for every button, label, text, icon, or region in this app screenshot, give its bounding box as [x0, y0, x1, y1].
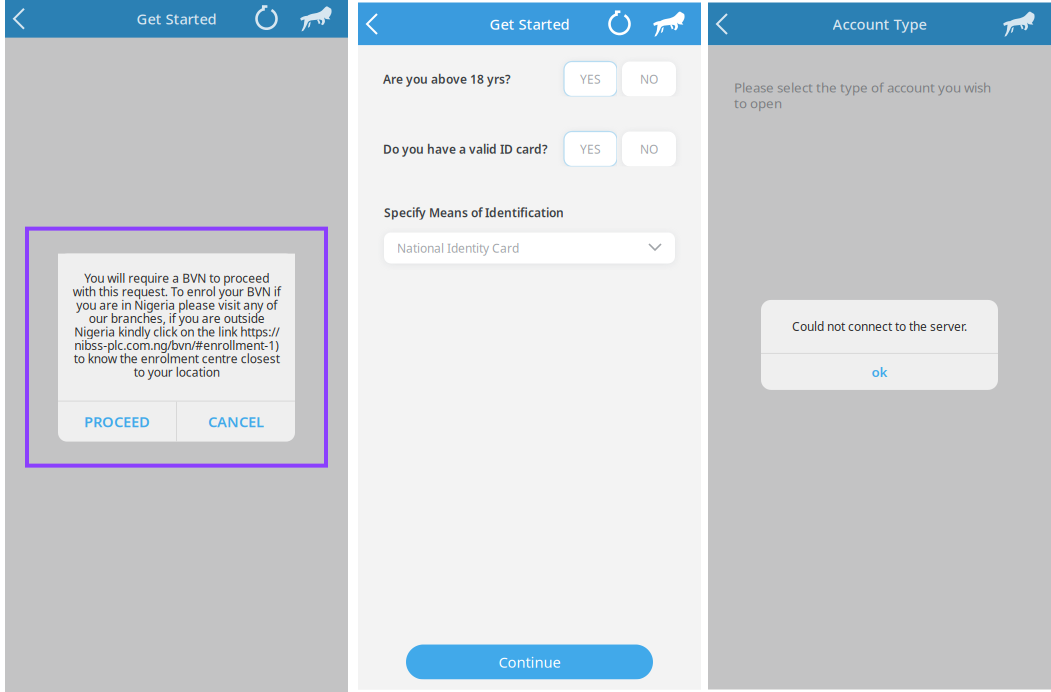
- button[interactable]: NO: [622, 61, 676, 96]
- button[interactable]: Refresh: [255, 0, 300, 40]
- staticText: You will require a BVN to proceed with t…: [72, 270, 280, 380]
- staticText: NO: [640, 141, 658, 157]
- button[interactable]: YES: [564, 61, 617, 96]
- staticText: Please select the type of account you wi…: [734, 78, 991, 112]
- staticText: Get Started: [136, 9, 216, 28]
- button[interactable]: Home: [1003, 2, 1051, 45]
- button[interactable]: YES: [564, 131, 617, 166]
- staticText: CANCEL: [208, 412, 264, 431]
- staticText: YES: [580, 71, 601, 87]
- staticText: Do you have a valid ID card?: [383, 141, 548, 157]
- button[interactable]: Back: [708, 2, 741, 45]
- staticText: YES: [580, 141, 601, 157]
- button[interactable]: Home: [653, 2, 701, 45]
- staticText: Account Type: [832, 14, 926, 34]
- button[interactable]: ok: [761, 354, 998, 390]
- button[interactable]: Home: [300, 0, 348, 40]
- staticText: ok: [871, 363, 887, 381]
- button[interactable]: Back: [5, 0, 38, 40]
- staticText: Are you above 18 yrs?: [383, 71, 511, 87]
- button[interactable]: CANCEL: [177, 402, 295, 442]
- button[interactable]: Continue: [406, 644, 653, 679]
- staticText: National Identity Card: [397, 240, 519, 256]
- button[interactable]: National Identity Card: [384, 232, 675, 263]
- staticText: Continue: [498, 652, 560, 672]
- staticText: NO: [640, 71, 658, 87]
- button[interactable]: Back: [358, 2, 391, 45]
- button[interactable]: PROCEED: [58, 402, 176, 442]
- button[interactable]: NO: [622, 131, 676, 166]
- staticText: Specify Means of Identification: [384, 204, 564, 220]
- staticText: Get Started: [489, 14, 569, 34]
- button[interactable]: Refresh: [608, 2, 653, 45]
- staticText: PROCEED: [84, 412, 150, 431]
- staticText: Could not connect to the server.: [792, 318, 967, 334]
